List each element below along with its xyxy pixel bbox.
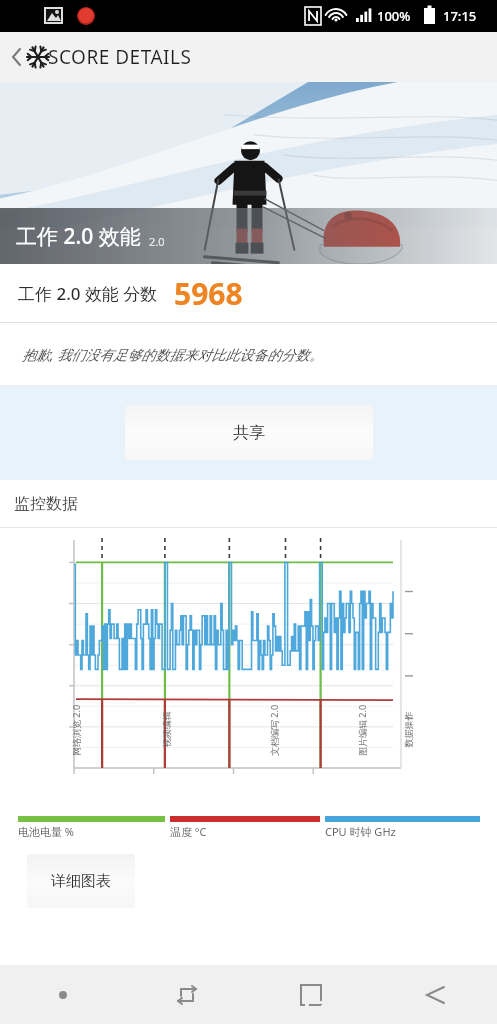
button[interactable]: Back: [0, 35, 44, 79]
staticText: 抱歉, 我们没有足够的数据来对比此设备的分数。: [22, 345, 324, 364]
staticText: 工作 2.0 效能: [16, 222, 141, 251]
button[interactable]: 详细图表: [27, 854, 135, 908]
staticText: 共享: [233, 423, 265, 443]
staticText: 工作 2.0 效能 分数: [18, 282, 158, 305]
staticText: 图片编辑 2.0: [356, 704, 368, 756]
button[interactable]: Home: [249, 965, 373, 1024]
staticText: 17:15: [443, 7, 477, 25]
staticText: 视频编辑: [160, 711, 171, 747]
staticText: 5968: [174, 273, 243, 314]
button[interactable]: Notification dot: [0, 965, 125, 1024]
button[interactable]: Recents: [125, 965, 249, 1024]
staticText: 电池电量 %: [18, 824, 75, 839]
staticText: CPU 时钟 GHz: [325, 824, 396, 839]
staticText: 100%: [377, 7, 411, 25]
staticText: 详细图表: [51, 872, 111, 891]
staticText: 2.0: [149, 234, 165, 249]
button[interactable]: 共享: [125, 405, 373, 460]
staticText: SCORE DETAILS: [48, 44, 192, 70]
staticText: 数据操作: [402, 711, 413, 747]
staticText: 温度 °C: [170, 824, 207, 839]
button[interactable]: Back: [373, 965, 497, 1024]
staticText: 网络浏览 2.0: [70, 704, 82, 756]
staticText: 文档编写 2.0: [268, 704, 280, 756]
staticText: 监控数据: [14, 494, 78, 514]
